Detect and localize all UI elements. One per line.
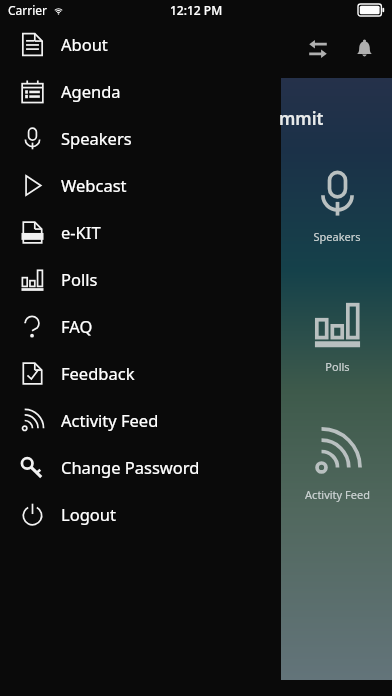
- button[interactable]: Change Password: [0, 443, 281, 490]
- staticText: About: [61, 33, 108, 55]
- staticText: Polls: [61, 268, 98, 290]
- button[interactable]: FAQ: [0, 302, 281, 349]
- staticText: mmit: [279, 107, 324, 130]
- staticText: e-KIT: [61, 221, 101, 243]
- staticText: Change Password: [61, 456, 200, 478]
- button[interactable]: Webcast: [0, 161, 281, 208]
- staticText: Speakers: [313, 229, 361, 244]
- button[interactable]: Activity Feed: [0, 396, 281, 443]
- button[interactable]: Polls: [301, 300, 373, 374]
- staticText: Agenda: [61, 80, 121, 102]
- button[interactable]: Feedback: [0, 349, 281, 396]
- button[interactable]: e-KIT: [0, 208, 281, 255]
- staticText: FAQ: [61, 315, 93, 337]
- staticText: Activity Feed: [305, 487, 370, 502]
- staticText: Logout: [61, 503, 116, 525]
- button[interactable]: Polls: [0, 255, 281, 302]
- button[interactable]: Speakers: [301, 170, 373, 244]
- staticText: 12:12 PM: [170, 2, 223, 18]
- staticText: Feedback: [61, 362, 135, 384]
- staticText: Carrier: [8, 2, 48, 18]
- button[interactable]: Activity Feed: [301, 428, 373, 502]
- staticText: Activity Feed: [61, 409, 159, 431]
- button[interactable]: About: [0, 20, 281, 67]
- button[interactable]: Sync: [301, 32, 335, 66]
- staticText: Polls: [325, 359, 350, 374]
- button[interactable]: Notifications: [347, 32, 381, 66]
- staticText: Webcast: [61, 174, 127, 196]
- button[interactable]: Speakers: [0, 114, 281, 161]
- staticText: Speakers: [61, 127, 132, 149]
- button[interactable]: Logout: [0, 490, 281, 537]
- button[interactable]: Agenda: [0, 67, 281, 114]
